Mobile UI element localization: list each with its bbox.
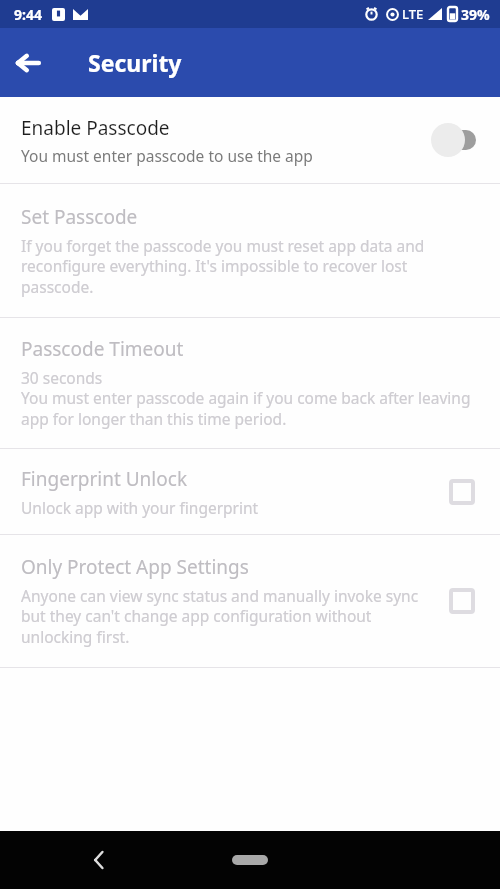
staticText: Enable Passcode bbox=[21, 115, 170, 141]
staticText: 30 seconds You must enter passcode again… bbox=[21, 367, 480, 430]
other: Only Protect App Settings bbox=[442, 581, 482, 621]
staticText: Anyone can view sync status and manually… bbox=[21, 585, 430, 648]
button[interactable]: Home bbox=[232, 855, 268, 865]
staticText: If you forget the passcode you must rese… bbox=[21, 235, 480, 298]
button[interactable]: Passcode Timeout bbox=[0, 318, 500, 448]
other: Fingerprint Unlock bbox=[442, 472, 482, 512]
button[interactable]: Back bbox=[0, 35, 56, 91]
button[interactable]: Set Passcode bbox=[0, 184, 500, 317]
staticText: 39% bbox=[461, 5, 490, 24]
staticText: Unlock app with your fingerprint bbox=[21, 497, 259, 518]
staticText: Security bbox=[88, 47, 182, 78]
staticText: Only Protect App Settings bbox=[21, 554, 249, 580]
staticText: Set Passcode bbox=[21, 204, 138, 230]
staticText: You must enter passcode to use the app bbox=[21, 145, 313, 166]
button[interactable]: Fingerprint Unlock bbox=[0, 449, 500, 534]
staticText: 9:44 bbox=[14, 5, 42, 24]
button[interactable]: Enable Passcode toggle bbox=[426, 120, 482, 160]
button[interactable]: Back bbox=[80, 840, 120, 880]
button[interactable]: Only Protect App Settings bbox=[0, 535, 500, 667]
button[interactable]: Enable Passcode bbox=[0, 97, 500, 183]
staticText: LTE bbox=[402, 5, 424, 23]
staticText: Passcode Timeout bbox=[21, 336, 184, 362]
staticText: Fingerprint Unlock bbox=[21, 466, 188, 492]
